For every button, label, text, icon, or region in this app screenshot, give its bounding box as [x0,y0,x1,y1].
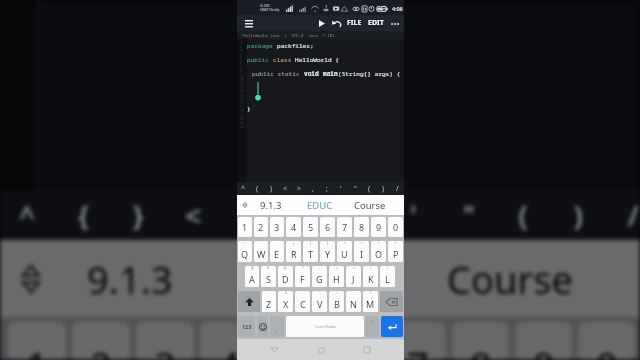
button[interactable]: / [390,182,404,195]
staticText: - [319,266,321,270]
staticText: 7 [240,65,242,69]
button[interactable]: @ [245,266,259,287]
staticText: 1 [240,41,242,45]
button[interactable]: ; [346,291,361,312]
button[interactable]: Home [312,341,330,359]
button[interactable]: ( [362,182,376,195]
button[interactable]: FILE [344,15,365,31]
button[interactable]: 0 [388,217,403,237]
button[interactable]: [ [303,241,318,262]
button[interactable]: " [348,182,362,195]
button[interactable]: Course [345,195,395,215]
staticText: S [266,273,271,285]
button[interactable]: ` [262,291,276,312]
button[interactable]: Enter [381,316,403,337]
button[interactable]: ) [380,266,395,287]
staticText: *HelloWorld.java | UTF-8 Java 7:101 [241,33,335,38]
button[interactable]: Smart Buddy [286,316,364,337]
button[interactable]: / [363,291,378,312]
button[interactable]: 6 [320,217,335,237]
button[interactable]: # [261,266,276,287]
button[interactable]: ! [270,316,284,337]
staticText: 2 [240,45,242,49]
button[interactable]: More options [387,16,402,31]
staticText: 11 [240,81,244,85]
staticText: 13 [240,89,244,93]
button[interactable]: > [354,241,369,262]
staticText: ; [326,184,328,194]
staticText: ) [387,266,388,270]
button[interactable]: , [306,182,320,195]
button[interactable]: ^ [237,182,250,195]
button[interactable]: ' [295,291,310,312]
staticText: 17 [240,105,244,109]
button[interactable]: < [278,182,292,195]
button[interactable]: & [278,266,293,287]
button[interactable]: Run [314,16,329,31]
button[interactable]: 3 [270,217,284,237]
button[interactable]: > [292,182,306,195]
button[interactable]: Undo [329,16,344,31]
button[interactable]: - [270,241,284,262]
staticText: 22 [240,125,244,129]
button[interactable]: : [329,291,344,312]
button[interactable]: - [312,266,327,287]
staticText: Q [241,248,249,260]
button[interactable]: ) [388,241,403,262]
button[interactable]: Emoji [257,316,268,337]
button[interactable]: < [337,241,352,262]
button[interactable]: ( [371,241,386,262]
button[interactable]: Menu [241,16,256,31]
button[interactable]: 2 [254,217,268,237]
button[interactable]: ) [264,182,278,195]
staticText: 6 [344,339,366,360]
button[interactable]: | [286,241,301,262]
button[interactable]: Back [265,341,283,359]
button[interactable]: ' [334,182,348,195]
button[interactable]: £ [278,291,293,312]
staticText: } [133,196,144,234]
staticText: I [360,248,364,260]
button[interactable]: = [346,266,361,287]
staticText: ] [327,241,329,245]
staticText: , [300,196,308,234]
button[interactable]: ~ [238,241,252,262]
staticText: A [249,273,255,285]
staticText: ( [256,184,259,194]
staticText: P [393,248,399,260]
button[interactable]: 9.1.3 [246,195,295,215]
button[interactable]: ( [363,266,378,287]
button[interactable]: + [329,266,344,287]
button[interactable]: EDIT [365,15,387,31]
button[interactable]: 9 [371,217,386,237]
button[interactable]: 5 [303,217,318,237]
staticText: : [336,291,337,295]
button[interactable]: ] [320,241,335,262]
staticText: EDIT [368,18,384,28]
staticText: & [284,266,287,270]
staticText: } [247,104,251,112]
button[interactable]: 7 [337,217,352,237]
button[interactable]: * [295,266,310,287]
button[interactable]: 8 [354,217,369,237]
staticText: F [300,273,305,285]
button[interactable]: " [312,291,327,312]
button[interactable]: 123 [238,316,255,337]
button[interactable]: ' [254,241,268,262]
button[interactable]: ) [376,182,390,195]
button[interactable]: Backspace [380,291,403,312]
staticText: / [396,184,399,194]
button[interactable]: 1 [238,217,252,237]
button[interactable]: Shift [238,291,260,312]
button[interactable]: 4 [286,217,301,237]
staticText: * [302,266,304,270]
staticText: U [341,248,348,260]
staticText: ! [277,319,278,324]
button[interactable]: Recents [358,341,376,359]
staticText: Course [447,253,573,305]
button[interactable]: ; [320,182,334,195]
button[interactable]: ( [250,182,264,195]
button[interactable]: EDUC [295,195,345,215]
button[interactable]: Expand suggestions [237,195,253,215]
